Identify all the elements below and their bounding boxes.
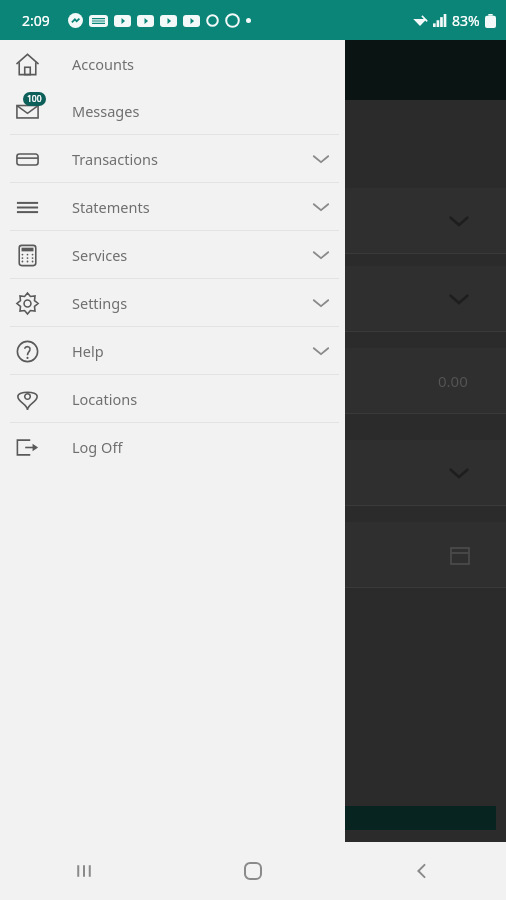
button[interactable]: Transactions <box>0 135 345 182</box>
button[interactable]: Locations <box>0 375 345 422</box>
button[interactable]: Back <box>337 842 506 900</box>
staticText: Help <box>72 341 104 361</box>
staticText: 0.00 <box>438 371 468 391</box>
staticText: Settings <box>72 293 128 313</box>
button[interactable]: Services <box>0 231 345 278</box>
button[interactable]: Accounts <box>0 40 345 87</box>
button[interactable]: Statements <box>0 183 345 230</box>
staticText: Messages <box>72 101 140 121</box>
button[interactable]: Recent apps <box>0 842 168 900</box>
button[interactable]: Home <box>168 842 337 900</box>
staticText: Statements <box>72 197 150 217</box>
staticText: 2:09 <box>22 11 50 30</box>
button[interactable]: Settings <box>0 279 345 326</box>
staticText: Log Off <box>72 437 123 457</box>
staticText: Accounts <box>72 54 135 74</box>
staticText: 83% <box>452 11 480 30</box>
button[interactable]: Help <box>0 327 345 374</box>
button[interactable]: Log Off <box>0 423 345 470</box>
button[interactable]: 100 <box>0 87 345 134</box>
staticText: 100 <box>27 93 42 105</box>
staticText: Services <box>72 245 128 265</box>
staticText: Transfer activity <box>14 130 126 150</box>
staticText: Locations <box>72 389 138 409</box>
staticText: Transactions <box>72 149 158 169</box>
